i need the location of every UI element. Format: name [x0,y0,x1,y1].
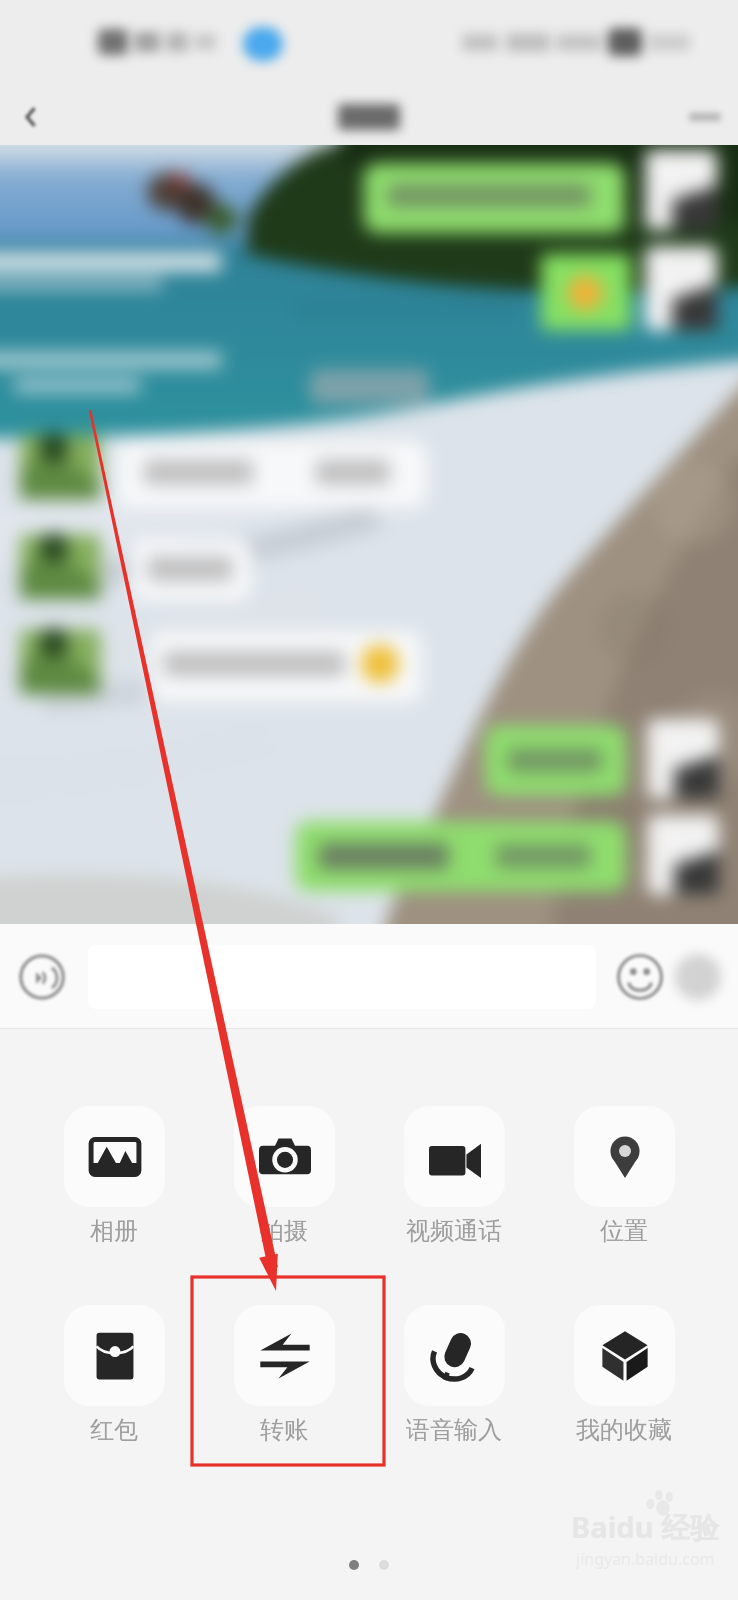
button[interactable]: 拍摄 [199,1106,369,1246]
staticText: 红包 [90,1415,138,1445]
button[interactable]: More [672,951,724,1003]
button[interactable]: More options [672,88,738,145]
button[interactable]: 红包 [29,1305,199,1445]
staticText: 拍摄 [260,1216,308,1246]
staticText: 相册 [90,1216,138,1246]
staticText: jingyan.baidu.com [576,1548,715,1570]
button[interactable]: 视频通话 [369,1106,539,1246]
button[interactable]: Back [0,88,62,145]
button[interactable]: 转账 [199,1305,369,1445]
staticText: 语音输入 [406,1415,502,1445]
staticText: Baidu 经验 [571,1507,720,1547]
button[interactable]: 我的收藏 [539,1305,709,1445]
staticText: 我的收藏 [576,1415,672,1445]
staticText: 转账 [260,1415,308,1445]
staticText: 视频通话 [406,1216,502,1246]
staticText: 位置 [600,1216,648,1246]
button[interactable]: Voice input [16,951,68,1003]
button[interactable]: 语音输入 [369,1305,539,1445]
button[interactable] [88,945,596,1009]
button[interactable]: Emoji [614,951,666,1003]
button[interactable]: 位置 [539,1106,709,1246]
button[interactable]: 相册 [29,1106,199,1246]
